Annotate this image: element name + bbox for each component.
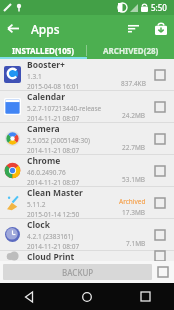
button[interactable]: Select Chrome xyxy=(150,161,170,181)
staticText: 53.1MB xyxy=(122,175,146,184)
button[interactable]: Select Clock xyxy=(150,225,170,245)
staticText: Chrome xyxy=(27,155,61,167)
button[interactable]: Backup xyxy=(147,15,174,42)
button[interactable]: INSTALLED(105) xyxy=(0,42,86,59)
staticText: 2014-11-21 08:07 xyxy=(27,178,80,186)
button[interactable]: Back xyxy=(0,283,58,310)
staticText: Clean Master xyxy=(27,187,83,199)
button[interactable]: Clock xyxy=(0,219,174,250)
staticText: 2014-11-21 08:07 xyxy=(27,242,80,250)
staticText: ARCHIVED(28) xyxy=(103,45,159,56)
button[interactable]: Booster+ xyxy=(0,59,174,90)
staticText: BACKUP xyxy=(62,267,94,278)
button[interactable]: Camera xyxy=(0,123,174,154)
staticText: 5.2.7-107213440-release xyxy=(27,104,102,113)
button[interactable]: Select all xyxy=(152,261,174,283)
staticText: 7.1MB xyxy=(126,239,146,248)
staticText: Booster+ xyxy=(27,59,65,71)
button[interactable]: BACKUP xyxy=(3,264,152,280)
staticText: INSTALLED(105) xyxy=(12,45,75,56)
button[interactable]: Select Calendar xyxy=(150,97,170,117)
button[interactable]: Select Booster+ xyxy=(150,65,170,85)
staticText: Calendar xyxy=(27,91,65,103)
button[interactable]: Cloud Print xyxy=(0,251,174,261)
button[interactable]: Select Camera xyxy=(150,129,170,149)
staticText: Cloud Print xyxy=(27,251,75,261)
staticText: Archived xyxy=(119,197,146,206)
staticText: 2014-11-21 08:07 xyxy=(27,114,80,122)
button[interactable]: Select Clean Master xyxy=(150,193,170,213)
staticText: Clock xyxy=(27,219,50,231)
button[interactable]: Clean Master xyxy=(0,187,174,218)
staticText: 2015-01-14 12:50 xyxy=(27,210,80,218)
staticText: 17.3MB xyxy=(122,208,146,217)
staticText: 5.11.2 xyxy=(27,200,46,209)
staticText: 24.2MB xyxy=(122,111,146,120)
button[interactable]: Back xyxy=(0,15,27,42)
staticText: 837.4KB xyxy=(121,79,146,88)
staticText: 22.7MB xyxy=(122,143,146,152)
button[interactable]: Calendar xyxy=(0,91,174,122)
staticText: 2014-11-21 08:07 xyxy=(27,146,80,154)
button[interactable]: ARCHIVED(28) xyxy=(87,42,174,59)
button[interactable]: Chrome xyxy=(0,155,174,186)
staticText: 2.5.052 (2005148:30) xyxy=(27,136,90,145)
staticText: Apps xyxy=(31,21,60,37)
button[interactable]: Home xyxy=(58,283,116,310)
button[interactable]: Select Cloud Print xyxy=(150,251,170,261)
staticText: Camera xyxy=(27,123,60,135)
staticText: 5:50 xyxy=(151,2,167,13)
button[interactable]: Sort xyxy=(120,15,147,42)
staticText: 1.3.1 xyxy=(27,72,42,81)
staticText: 2015-04-08 16:01 xyxy=(27,82,80,90)
button[interactable]: Recents xyxy=(116,283,174,310)
staticText: 46.0.2490.76 xyxy=(27,168,66,177)
staticText: 4.2.1 (2383161) xyxy=(27,232,74,241)
